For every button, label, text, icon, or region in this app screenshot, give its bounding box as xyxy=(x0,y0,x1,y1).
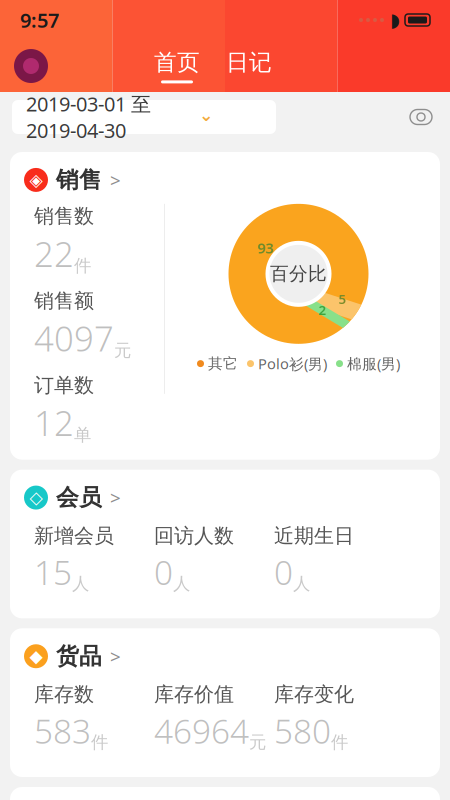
staticText: ⌄ xyxy=(199,105,214,125)
staticText: Polo衫(男) xyxy=(258,354,327,373)
staticText: > xyxy=(110,485,121,510)
staticText: 百分比 xyxy=(270,262,327,285)
staticText: 2019-03-01 至 2019-04-30 xyxy=(26,90,151,143)
staticText: 会员 xyxy=(56,484,102,511)
staticText: 回访人数 xyxy=(154,523,234,548)
staticText: 货品 xyxy=(56,642,102,670)
staticText: 22 xyxy=(34,230,74,276)
staticText: 件 xyxy=(74,255,91,276)
button[interactable]: 2019-03-01 至 2019-04-30 xyxy=(12,100,276,134)
button[interactable]: ◇ xyxy=(24,484,426,511)
staticText: 销售额 xyxy=(34,288,94,313)
staticText: 0 xyxy=(154,550,173,594)
staticText: 其它 xyxy=(208,355,238,373)
button[interactable]: Toggle visibility xyxy=(404,100,438,134)
staticText: 人 xyxy=(72,573,89,594)
staticText: 首页 xyxy=(154,49,200,76)
staticText: 销售 xyxy=(56,166,102,194)
button[interactable]: ◈ xyxy=(24,166,426,194)
staticText: 棉服(男) xyxy=(347,354,400,373)
staticText: 库存价值 xyxy=(154,682,234,707)
staticText: 元 xyxy=(249,732,266,753)
staticText: 人 xyxy=(293,573,310,594)
staticText: 订单数 xyxy=(34,373,94,398)
staticText: 15 xyxy=(34,550,72,594)
staticText: 5 xyxy=(338,290,346,308)
staticText: 4097 xyxy=(34,315,114,361)
staticText: 库存变化 xyxy=(274,682,354,707)
staticText: 单 xyxy=(74,424,91,446)
staticText: 583 xyxy=(34,709,91,753)
staticText: 近期生日 xyxy=(274,523,354,548)
staticText: ◇ xyxy=(29,488,42,507)
staticText: 93 xyxy=(257,238,273,258)
staticText: > xyxy=(110,644,121,669)
staticText: 日记 xyxy=(226,49,272,76)
staticText: 580 xyxy=(274,709,331,753)
staticText: 46964 xyxy=(154,709,249,753)
staticText: 12 xyxy=(34,400,74,446)
button[interactable]: Profile xyxy=(14,49,48,83)
staticText: ◈ xyxy=(29,170,42,190)
staticText: > xyxy=(110,167,121,192)
staticText: 9:57 xyxy=(20,7,59,33)
staticText: 库存数 xyxy=(34,682,94,707)
staticText: 销售数 xyxy=(34,204,94,228)
staticText: 元 xyxy=(114,340,131,361)
staticText: 新增会员 xyxy=(34,523,114,548)
button[interactable]: 日记 xyxy=(226,49,272,83)
staticText: ◗ xyxy=(390,9,400,31)
staticText: 2 xyxy=(318,301,326,319)
staticText: 件 xyxy=(91,732,108,753)
staticText: ◆ xyxy=(29,646,42,666)
staticText: 件 xyxy=(331,732,348,753)
button[interactable]: ◆ xyxy=(24,642,426,670)
button[interactable]: 首页 xyxy=(154,49,200,83)
staticText: 0 xyxy=(274,550,293,594)
staticText: 人 xyxy=(173,573,190,594)
